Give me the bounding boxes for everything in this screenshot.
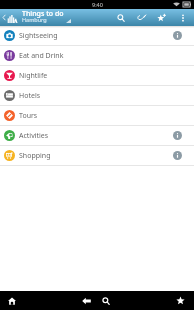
staticText: Things to do	[22, 9, 64, 19]
button[interactable]: Sightseeing	[0, 26, 194, 45]
staticText: Shopping	[19, 151, 51, 161]
staticText: Hotels	[19, 91, 41, 101]
button[interactable]: Home	[2, 291, 22, 310]
button[interactable]: Back	[0, 9, 7, 26]
staticText: 9:40	[92, 1, 103, 8]
button[interactable]: Search	[96, 291, 116, 310]
button[interactable]: More info	[168, 26, 187, 45]
button[interactable]: Tours	[0, 106, 194, 125]
staticText: Nightlife	[19, 71, 48, 81]
button[interactable]: Search	[110, 9, 131, 26]
button[interactable]: Shopping	[0, 146, 194, 165]
staticText: Activities	[19, 131, 49, 141]
staticText: Eat and Drink	[19, 51, 64, 61]
button[interactable]: Back	[76, 291, 96, 310]
button[interactable]: More info	[168, 126, 187, 145]
button[interactable]: More info	[168, 146, 187, 165]
button[interactable]: Add to favorites	[151, 9, 171, 26]
staticText: Sightseeing	[19, 31, 58, 41]
staticText: Tours	[19, 111, 38, 121]
button[interactable]: Check in	[131, 9, 151, 26]
button[interactable]: Nightlife	[0, 66, 194, 85]
button[interactable]: Activities	[0, 126, 194, 145]
button[interactable]: Favorites	[170, 291, 190, 310]
button[interactable]: Hotels	[0, 86, 194, 105]
button[interactable]: More options	[171, 9, 194, 26]
button[interactable]: Eat and Drink	[0, 46, 194, 65]
staticText: Hamburg	[22, 16, 47, 23]
